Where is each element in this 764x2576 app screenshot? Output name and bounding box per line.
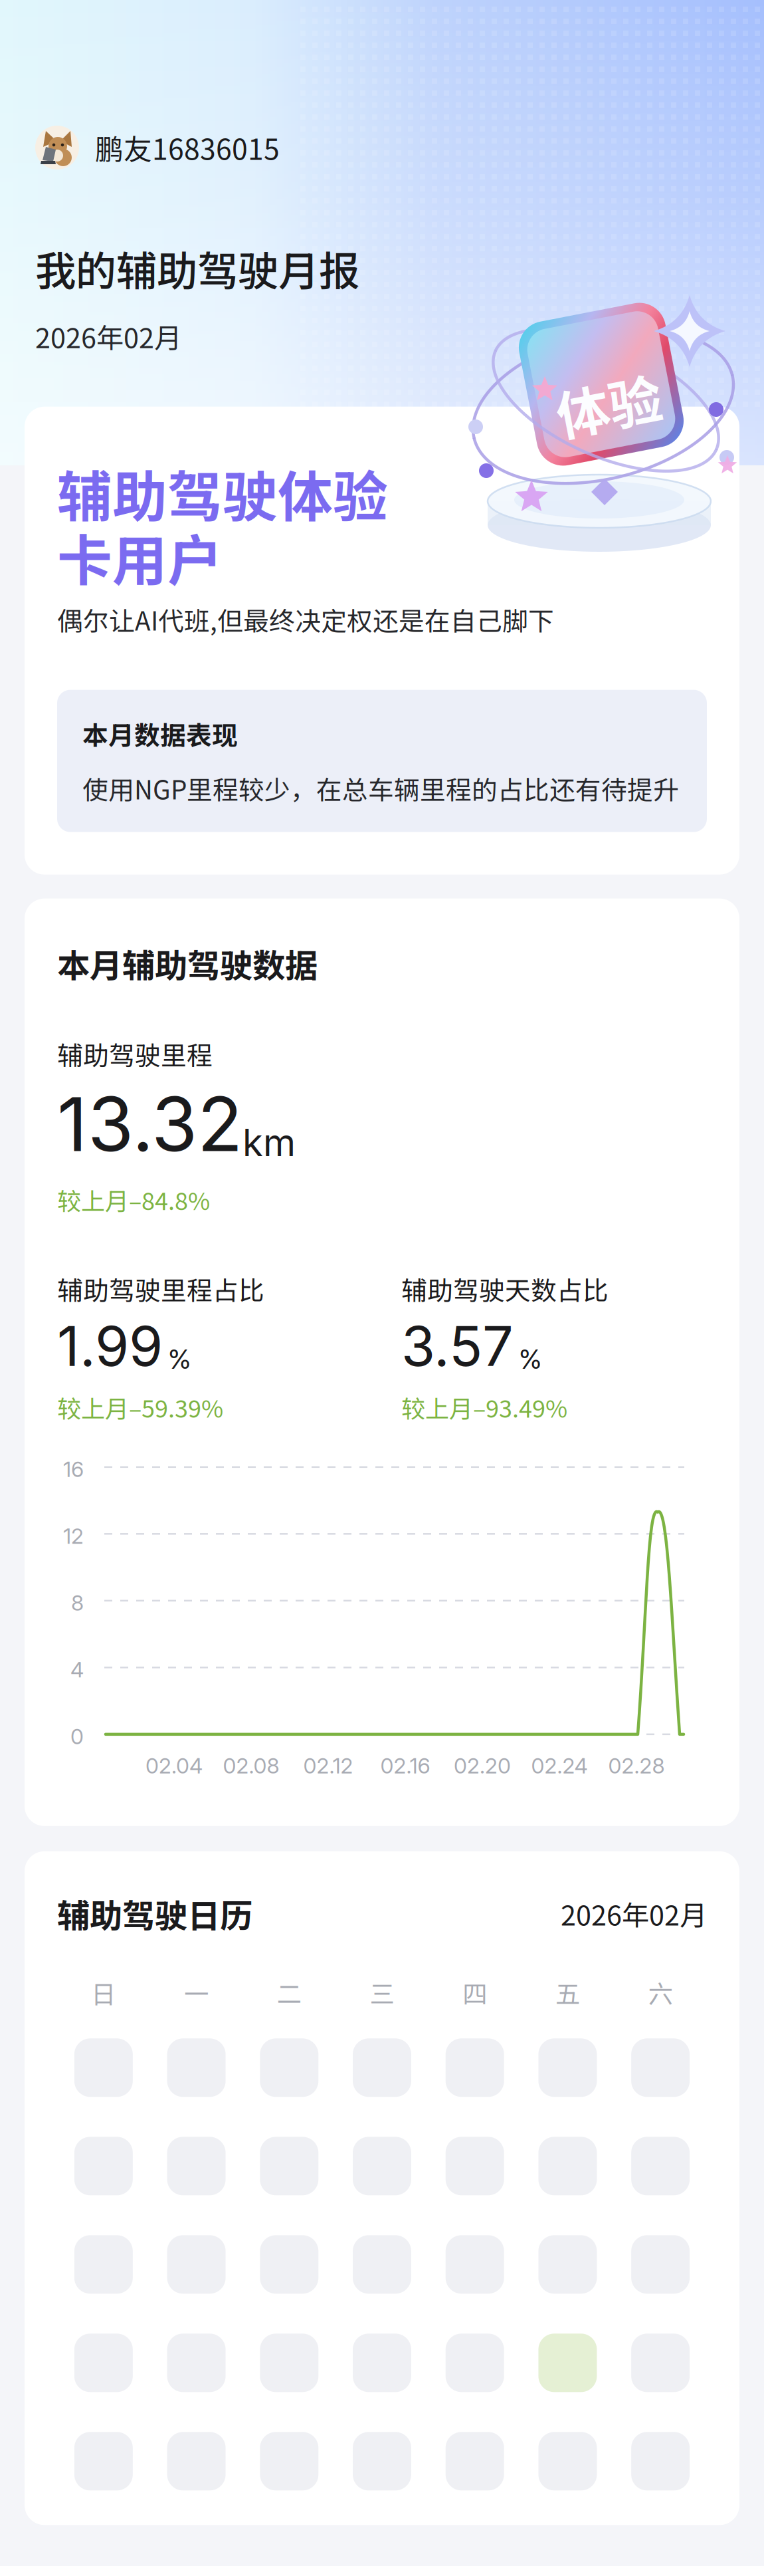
- staticText: 02.12: [303, 1753, 353, 1779]
- staticText: 本月辅助驾驶数据: [57, 940, 318, 987]
- staticText: %: [519, 1343, 541, 1375]
- staticText: 使用NGP里程较少，在总车辆里程的占比还有待提升: [82, 770, 679, 807]
- staticText: 02.24: [531, 1753, 588, 1779]
- staticText: 偶尔让AI代班,但最终决定权还是在自己脚下: [57, 601, 554, 638]
- staticText: 二: [277, 1975, 301, 2011]
- staticText: 六: [648, 1975, 673, 2011]
- staticText: 02.20: [454, 1753, 511, 1779]
- staticText: 我的辅助驾驶月报: [35, 239, 359, 298]
- staticText: 02.16: [380, 1753, 430, 1779]
- staticText: 2026年02月: [35, 316, 181, 356]
- staticText: 2026年02月: [561, 1894, 707, 1933]
- staticText: 日: [91, 1975, 116, 2011]
- staticText: 02.28: [608, 1753, 665, 1779]
- staticText: 16: [63, 1456, 84, 1482]
- staticText: 本月数据表现: [82, 715, 238, 752]
- staticText: 体验: [555, 366, 662, 443]
- staticText: 3.57: [401, 1313, 514, 1379]
- staticText: 02.08: [223, 1753, 279, 1779]
- staticText: 8: [71, 1590, 84, 1616]
- staticText: 五: [555, 1975, 580, 2011]
- staticText: 较上月–84.8%: [57, 1182, 210, 1217]
- staticText: 4: [70, 1657, 84, 1683]
- staticText: 02.04: [145, 1753, 203, 1779]
- staticText: 辅助驾驶天数占比: [401, 1270, 609, 1307]
- staticText: 辅助驾驶体验: [57, 453, 388, 533]
- staticText: 1.99: [57, 1313, 163, 1379]
- staticText: %: [168, 1343, 191, 1375]
- staticText: 13.32: [57, 1079, 242, 1169]
- staticText: 四: [463, 1975, 487, 2011]
- staticText: 较上月–59.39%: [57, 1390, 223, 1424]
- staticText: 辅助驾驶里程占比: [57, 1270, 264, 1307]
- staticText: km: [242, 1120, 296, 1165]
- staticText: 卡用户: [57, 517, 223, 597]
- staticText: 鹏友16836015: [95, 127, 280, 168]
- staticText: 辅助驾驶日历: [57, 1890, 252, 1937]
- staticText: 一: [184, 1975, 209, 2011]
- staticText: 较上月–93.49%: [401, 1390, 567, 1424]
- staticText: 三: [370, 1975, 394, 2011]
- staticText: 0: [70, 1724, 84, 1749]
- staticText: 12: [63, 1523, 84, 1549]
- staticText: 辅助驾驶里程: [57, 1035, 213, 1072]
